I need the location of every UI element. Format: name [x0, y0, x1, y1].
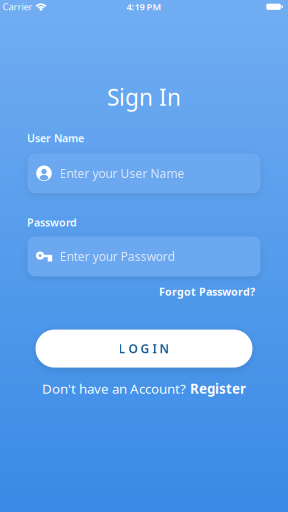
button[interactable]: Don't have an Account? — [42, 380, 246, 397]
staticText: Sign In — [107, 82, 181, 112]
staticText: Forgot Password? — [159, 284, 255, 299]
staticText: Carrier — [2, 1, 32, 13]
staticText: Enter your User Name — [59, 165, 184, 181]
button[interactable]: L O G I N — [35, 330, 252, 368]
button[interactable]: Enter your Password — [27, 236, 260, 276]
staticText: 4:19 PM — [126, 1, 161, 13]
staticText: Don't have an Account? — [42, 380, 186, 397]
staticText: Register — [190, 380, 246, 397]
button[interactable]: Enter your User Name — [27, 153, 260, 193]
button[interactable]: Forgot Password? — [159, 284, 255, 299]
staticText: L O G I N — [118, 341, 169, 356]
staticText: User Name — [27, 131, 84, 145]
staticText: Enter your Password — [60, 248, 175, 264]
staticText: Password — [27, 215, 77, 229]
